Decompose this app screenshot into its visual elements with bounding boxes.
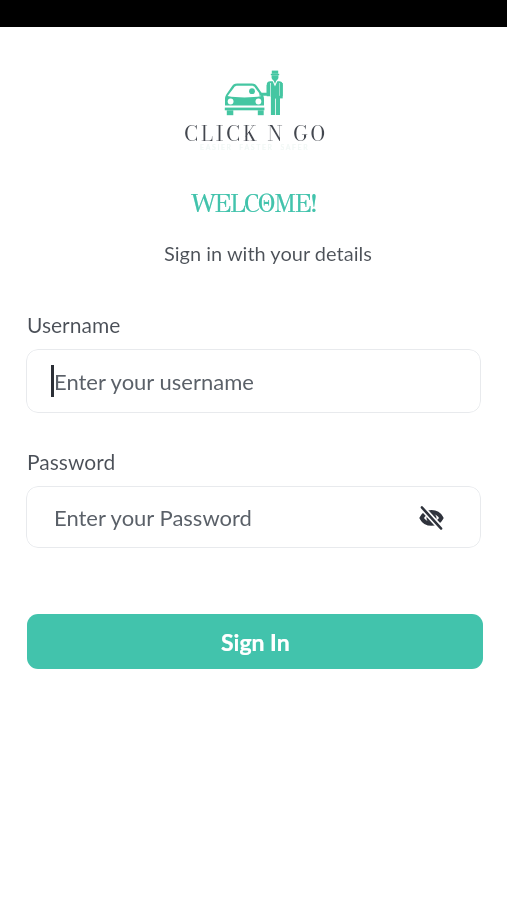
button[interactable]: Sign In (27, 614, 483, 669)
staticText: Username (27, 312, 121, 337)
staticText: CLICK N GO (184, 118, 328, 149)
staticText: EASIER FASTER SAFER (200, 143, 310, 151)
staticText: Sign In (221, 628, 290, 656)
staticText: Enter your Password (54, 504, 252, 530)
button[interactable]: Enter your Password (26, 486, 481, 548)
staticText: WELCΘME! (191, 188, 316, 219)
staticText: Enter your username (54, 368, 254, 394)
staticText: Password (27, 449, 116, 474)
button[interactable]: Enter your username (26, 349, 481, 413)
button[interactable]: Show password (414, 500, 448, 534)
staticText: Sign in with your details (164, 241, 372, 265)
